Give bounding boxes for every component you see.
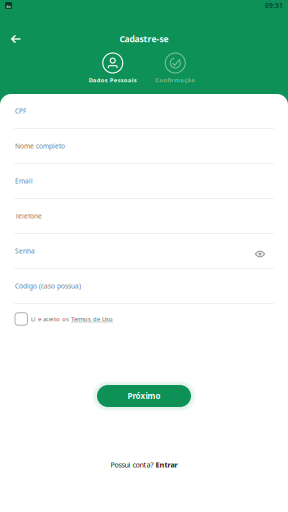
staticText: Senha	[15, 247, 35, 255]
staticText: Email	[15, 177, 33, 185]
staticText: 09:31	[265, 1, 283, 10]
staticText: Próximo	[127, 391, 160, 401]
staticText: CPF	[15, 107, 26, 115]
staticText: Telefone	[15, 212, 42, 220]
staticText: Possui conta? Entrar	[110, 460, 177, 470]
staticText: Cadastre-se	[119, 33, 168, 45]
staticText: Nome completo	[15, 142, 65, 150]
button[interactable]: Mostrar senha	[247, 239, 273, 263]
staticText: Código (caso possua)	[15, 282, 81, 290]
button[interactable]: Li e aceito os	[0, 304, 288, 334]
staticText: Li e aceito os	[31, 315, 69, 323]
staticText: Confirmação	[155, 76, 195, 84]
staticText: Dados Pessoais	[89, 76, 137, 84]
staticText: Termos de Uso	[71, 315, 113, 323]
button[interactable]: Voltar	[5, 28, 27, 50]
button[interactable]: Próximo	[89, 380, 199, 412]
